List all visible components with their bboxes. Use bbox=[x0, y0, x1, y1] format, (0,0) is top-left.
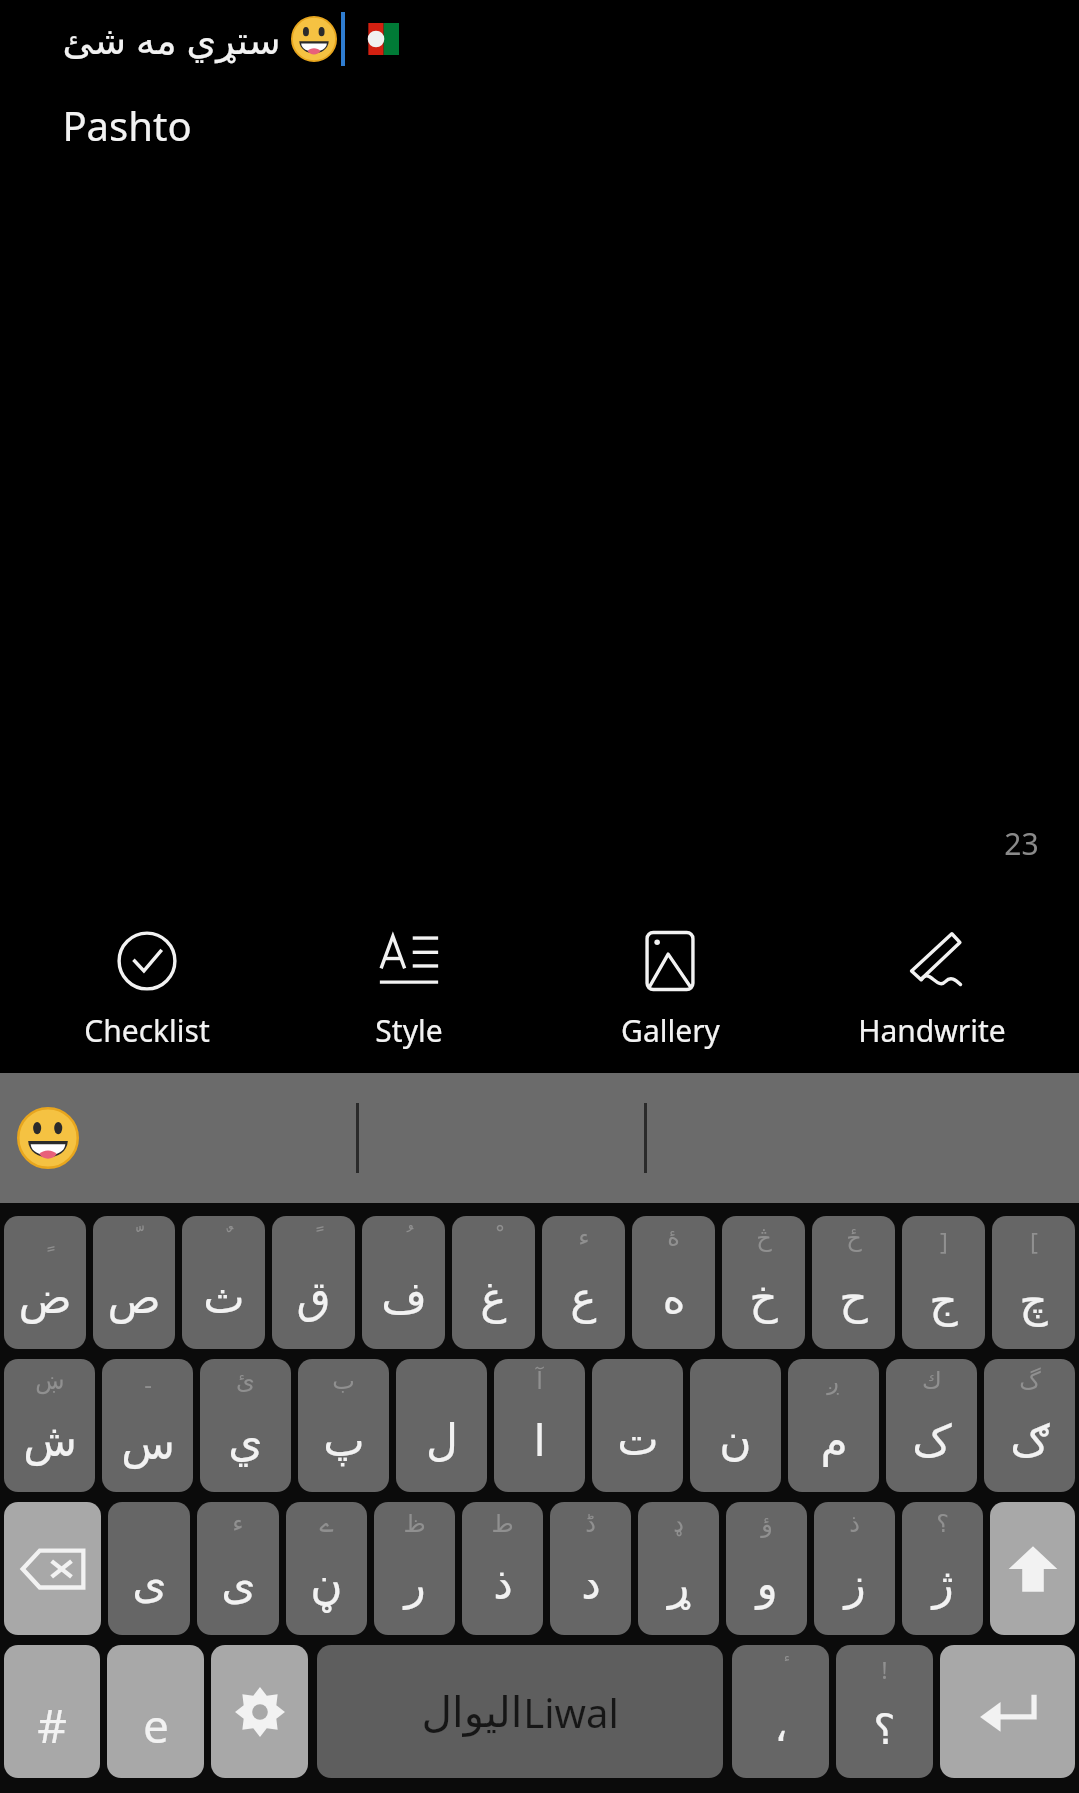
staticText: ل bbox=[426, 1414, 458, 1465]
staticText: Checklist bbox=[84, 1010, 210, 1051]
button[interactable]: Space bbox=[317, 1645, 723, 1778]
staticText: ى bbox=[221, 1558, 256, 1609]
staticText: ے bbox=[319, 1510, 334, 1538]
staticText: ز bbox=[844, 1558, 866, 1609]
staticText: ۀ bbox=[667, 1224, 680, 1252]
staticText: ک bbox=[912, 1415, 952, 1466]
staticText: ح bbox=[839, 1272, 868, 1323]
button[interactable]: ږ bbox=[788, 1359, 879, 1492]
button[interactable]: ْ bbox=[452, 1216, 535, 1349]
staticText: Style bbox=[375, 1010, 443, 1051]
staticText: 23 bbox=[1004, 823, 1039, 864]
button[interactable]: ط bbox=[462, 1502, 543, 1635]
staticText: ، bbox=[774, 1702, 788, 1751]
button[interactable]: ډ bbox=[638, 1502, 719, 1635]
button[interactable]: Emoji bbox=[14, 1104, 82, 1172]
button[interactable]: ّ bbox=[93, 1216, 175, 1349]
button[interactable]: ځ bbox=[812, 1216, 895, 1349]
staticText: ه bbox=[662, 1272, 686, 1323]
button[interactable]: Settings bbox=[211, 1645, 308, 1778]
button[interactable]: ئ bbox=[200, 1359, 291, 1492]
button[interactable]: ښ bbox=[4, 1359, 95, 1492]
staticText: ذ bbox=[849, 1510, 860, 1538]
button[interactable]: [ bbox=[992, 1216, 1075, 1349]
staticText: e bbox=[143, 1694, 169, 1757]
staticText: ب bbox=[332, 1367, 355, 1395]
button[interactable]: ت bbox=[592, 1359, 683, 1492]
staticText: ئ bbox=[236, 1367, 255, 1395]
staticText: ډ bbox=[673, 1510, 684, 1538]
button[interactable]: Backspace bbox=[4, 1502, 101, 1635]
button[interactable]: گ bbox=[984, 1359, 1075, 1492]
button[interactable]: ن bbox=[690, 1359, 781, 1492]
staticText: ت bbox=[617, 1414, 659, 1465]
staticText: غ bbox=[480, 1272, 507, 1323]
button[interactable]: ذ bbox=[814, 1502, 895, 1635]
staticText: ڈ bbox=[585, 1510, 596, 1538]
staticText: و bbox=[756, 1558, 778, 1609]
staticText: - bbox=[144, 1367, 152, 1400]
staticText: Gallery bbox=[621, 1010, 720, 1051]
staticText: ا bbox=[533, 1415, 546, 1466]
staticText: Liwal bbox=[523, 1685, 619, 1739]
staticText: ف bbox=[381, 1272, 427, 1323]
staticText: د bbox=[581, 1558, 601, 1609]
button[interactable]: Handwrite bbox=[817, 930, 1047, 1051]
button[interactable]: e bbox=[107, 1645, 204, 1778]
staticText: ؤ bbox=[761, 1510, 773, 1538]
staticText: # bbox=[37, 1694, 67, 1757]
button[interactable]: ل bbox=[396, 1359, 487, 1492]
button[interactable]: ٌ bbox=[182, 1216, 265, 1349]
staticText: ش bbox=[23, 1415, 77, 1466]
staticText: ګ bbox=[1010, 1415, 1050, 1466]
button[interactable]: - bbox=[102, 1359, 193, 1492]
staticText: ږ bbox=[827, 1367, 840, 1395]
button[interactable]: ! bbox=[836, 1645, 933, 1778]
staticText: گ bbox=[1019, 1367, 1041, 1395]
staticText: ء bbox=[232, 1510, 244, 1538]
button[interactable]: ؤ bbox=[726, 1502, 807, 1635]
button[interactable]: ] bbox=[902, 1216, 985, 1349]
staticText: څ bbox=[756, 1224, 772, 1252]
button[interactable]: ء bbox=[197, 1502, 279, 1635]
button[interactable]: Enter bbox=[940, 1645, 1075, 1778]
staticText: الیوال bbox=[421, 1688, 523, 1737]
button[interactable]: ب bbox=[298, 1359, 389, 1492]
staticText: ج bbox=[929, 1275, 958, 1326]
staticText: ث bbox=[203, 1272, 245, 1323]
staticText: ؟ bbox=[936, 1510, 949, 1538]
staticText: ر bbox=[404, 1558, 426, 1609]
button[interactable]: # bbox=[4, 1645, 100, 1778]
button[interactable]: ٔ bbox=[732, 1645, 829, 1778]
staticText: ط bbox=[491, 1510, 514, 1538]
button[interactable]: ً bbox=[272, 1216, 355, 1349]
button[interactable]: Checklist bbox=[32, 930, 262, 1051]
button[interactable]: Style bbox=[294, 930, 524, 1051]
staticText: چ bbox=[1019, 1275, 1048, 1326]
staticText: ص bbox=[107, 1272, 161, 1323]
staticText: Handwrite bbox=[858, 1010, 1006, 1051]
staticText: ؟ bbox=[873, 1705, 896, 1754]
button[interactable]: ٍ bbox=[4, 1216, 86, 1349]
button[interactable]: څ bbox=[722, 1216, 805, 1349]
button[interactable]: ؟ bbox=[902, 1502, 983, 1635]
button[interactable]: Gallery bbox=[555, 930, 785, 1051]
staticText: [ bbox=[1030, 1224, 1038, 1257]
button[interactable]: ظ bbox=[374, 1502, 455, 1635]
staticText: ! bbox=[881, 1653, 888, 1686]
button[interactable]: ُ bbox=[362, 1216, 445, 1349]
staticText: ن bbox=[719, 1414, 752, 1465]
button[interactable]: ء bbox=[542, 1216, 625, 1349]
button[interactable]: Shift bbox=[990, 1502, 1075, 1635]
button[interactable]: ی bbox=[108, 1502, 190, 1635]
staticText: ی bbox=[132, 1557, 167, 1608]
staticText: پ bbox=[323, 1415, 365, 1466]
button[interactable]: ك bbox=[886, 1359, 977, 1492]
button[interactable]: آ bbox=[494, 1359, 585, 1492]
button[interactable]: ۀ bbox=[632, 1216, 715, 1349]
button[interactable]: ے bbox=[286, 1502, 367, 1635]
button[interactable]: ڈ bbox=[550, 1502, 631, 1635]
staticText: ځ bbox=[846, 1224, 862, 1252]
staticText: ړ bbox=[668, 1558, 690, 1609]
staticText: ك bbox=[922, 1367, 942, 1395]
